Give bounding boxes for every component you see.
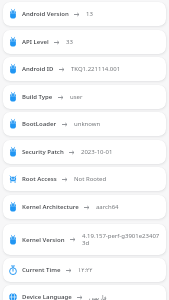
button[interactable]: Kernel Architecture xyxy=(3,195,166,219)
button[interactable]: Build Type xyxy=(3,85,166,109)
button[interactable]: Device Language xyxy=(3,285,166,300)
staticText: 2023-10-01 xyxy=(81,148,113,156)
staticText: Device Language xyxy=(22,293,72,300)
staticText: unknown xyxy=(74,120,101,128)
button[interactable]: Android Version xyxy=(3,2,166,26)
staticText: Root Access xyxy=(22,175,57,183)
button[interactable]: BootLoader xyxy=(3,112,166,136)
staticText: Security Patch xyxy=(22,148,64,156)
staticText: TKQ1.221114.001 xyxy=(71,65,121,73)
button[interactable]: Android ID xyxy=(3,57,166,81)
button[interactable]: Current Time xyxy=(3,258,166,282)
staticText: aarch64 xyxy=(96,203,119,211)
staticText: Not Rooted xyxy=(74,175,107,183)
staticText: فارسی xyxy=(89,294,107,300)
staticText: Kernel Version xyxy=(22,236,65,244)
staticText: Build Type xyxy=(22,93,53,101)
staticText: Android ID xyxy=(22,65,54,73)
staticText: BootLoader xyxy=(22,120,57,128)
staticText: user xyxy=(70,93,83,101)
staticText: ۱۲:۲۲ xyxy=(78,266,93,274)
staticText: 4.19.157-perf-g3901e23407 3d xyxy=(82,232,160,247)
staticText: Android Version xyxy=(22,10,69,18)
staticText: 33 xyxy=(66,38,73,46)
button[interactable]: API Level xyxy=(3,30,166,54)
button[interactable]: Security Patch xyxy=(3,140,166,164)
staticText: Kernel Architecture xyxy=(22,203,79,211)
staticText: Current Time xyxy=(22,266,61,274)
staticText: API Level xyxy=(22,38,49,46)
button[interactable]: Kernel Version xyxy=(3,224,166,255)
button[interactable]: Root Access xyxy=(3,167,166,191)
staticText: 13 xyxy=(86,10,93,18)
